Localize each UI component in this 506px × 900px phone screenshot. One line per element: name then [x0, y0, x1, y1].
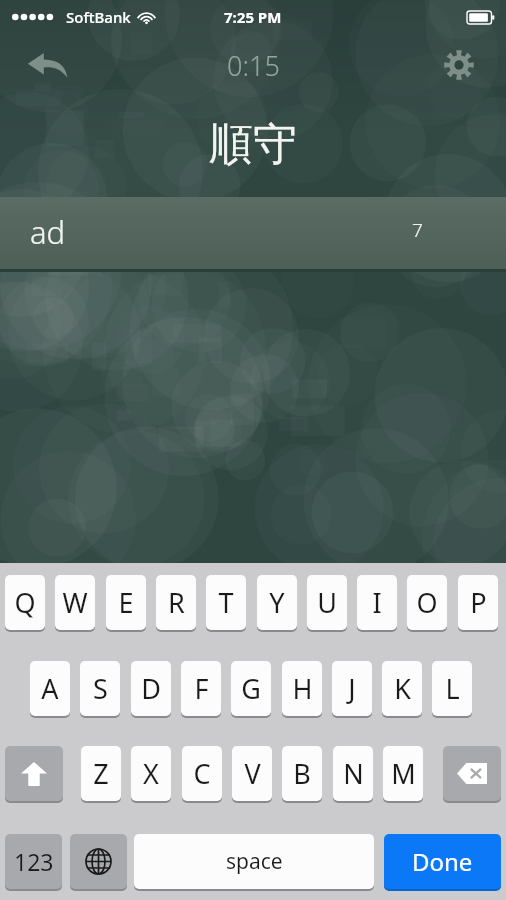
staticText: M — [391, 755, 416, 792]
staticText: 123 — [14, 846, 54, 877]
staticText: L — [445, 670, 460, 707]
staticText: P — [470, 584, 487, 621]
button[interactable]: Back — [22, 43, 74, 87]
button[interactable]: N — [333, 746, 373, 803]
staticText: space — [226, 847, 283, 876]
button[interactable]: ad — [0, 197, 506, 269]
staticText: S — [93, 670, 108, 707]
button[interactable]: G — [231, 661, 271, 718]
button[interactable]: V — [232, 746, 272, 803]
staticText: A — [41, 670, 59, 707]
staticText: E — [118, 584, 134, 621]
button[interactable]: B — [282, 746, 322, 803]
button[interactable]: I — [357, 575, 397, 632]
button[interactable]: Settings — [436, 43, 482, 87]
button[interactable]: Z — [81, 746, 121, 803]
staticText: V — [244, 755, 261, 792]
staticText: 7 — [412, 217, 423, 243]
button[interactable]: X — [131, 746, 171, 803]
button[interactable]: J — [332, 661, 372, 718]
staticText: T — [218, 584, 234, 621]
staticText: O — [416, 584, 438, 621]
button[interactable]: W — [55, 575, 95, 632]
staticText: J — [348, 670, 356, 707]
staticText: G — [241, 670, 261, 707]
staticText: N — [343, 755, 364, 792]
button[interactable]: T — [206, 575, 246, 632]
button[interactable]: Y — [257, 575, 297, 632]
button[interactable]: L — [432, 661, 472, 718]
button[interactable]: E — [106, 575, 146, 632]
button[interactable]: M — [383, 746, 423, 803]
button[interactable]: Globe — [70, 834, 127, 891]
button[interactable]: Shift — [5, 746, 63, 803]
button[interactable]: R — [156, 575, 196, 632]
button[interactable]: P — [458, 575, 498, 632]
button[interactable]: H — [282, 661, 322, 718]
staticText: I — [372, 584, 382, 621]
staticText: R — [168, 584, 185, 621]
button[interactable]: space — [134, 834, 374, 891]
staticText: C — [193, 755, 211, 792]
button[interactable]: A — [30, 661, 70, 718]
staticText: 順守 — [209, 117, 297, 172]
staticText: ad — [30, 211, 66, 253]
staticText: Done — [412, 845, 473, 878]
button[interactable]: U — [307, 575, 347, 632]
button[interactable]: D — [131, 661, 171, 718]
staticText: H — [292, 670, 313, 707]
button[interactable]: C — [182, 746, 222, 803]
staticText: X — [143, 755, 159, 792]
staticText: Z — [93, 755, 109, 792]
button[interactable]: Backspace — [443, 746, 501, 803]
staticText: W — [62, 584, 88, 621]
staticText: U — [317, 584, 337, 621]
staticText: 0:15 — [227, 47, 280, 84]
staticText: 7:25 PM — [224, 7, 282, 27]
staticText: SoftBank — [66, 7, 131, 27]
button[interactable]: Done — [384, 834, 501, 891]
button[interactable]: O — [407, 575, 447, 632]
staticText: F — [194, 670, 209, 707]
button[interactable]: 123 — [5, 834, 62, 891]
staticText: Y — [269, 584, 285, 621]
staticText: K — [394, 670, 411, 707]
button[interactable]: K — [382, 661, 422, 718]
staticText: B — [293, 755, 311, 792]
button[interactable]: S — [80, 661, 120, 718]
button[interactable]: F — [181, 661, 221, 718]
button[interactable]: Q — [5, 575, 45, 632]
staticText: D — [141, 670, 161, 707]
staticText: Q — [14, 584, 36, 621]
